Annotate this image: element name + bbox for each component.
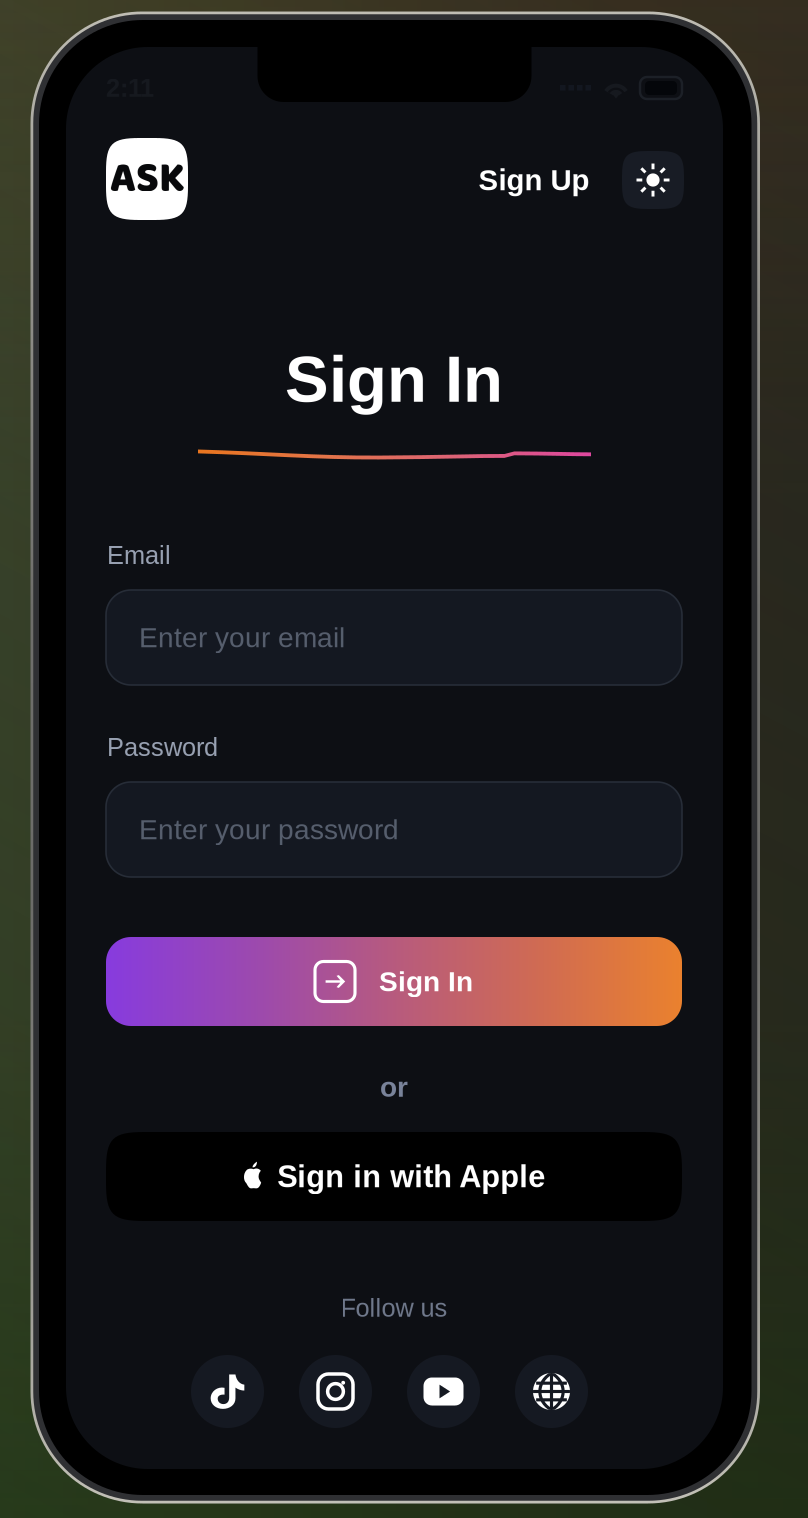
staticText: ASK bbox=[110, 146, 184, 212]
staticText: Enter your password bbox=[139, 814, 399, 845]
button[interactable]: YouTube bbox=[407, 1355, 480, 1428]
button[interactable]: Sign in with Apple bbox=[106, 1132, 682, 1221]
button[interactable]: Website bbox=[515, 1355, 588, 1428]
staticText: Sign In bbox=[379, 966, 473, 997]
staticText: 2:11 bbox=[106, 74, 154, 102]
button[interactable]: Toggle appearance bbox=[622, 151, 684, 209]
button[interactable]: TikTok bbox=[191, 1355, 264, 1428]
staticText: Email bbox=[107, 541, 171, 569]
button[interactable]: Enter your password bbox=[106, 782, 682, 877]
button[interactable]: Sign Up bbox=[479, 160, 589, 200]
staticText: Sign in with Apple bbox=[277, 1159, 545, 1194]
staticText: Sign In bbox=[285, 342, 503, 415]
button[interactable]: Instagram bbox=[299, 1355, 372, 1428]
button[interactable]: Enter your email bbox=[106, 590, 682, 685]
staticText: Sign Up bbox=[478, 164, 589, 196]
button[interactable]: ASK bbox=[106, 138, 188, 220]
staticText: Password bbox=[107, 733, 218, 761]
staticText: Enter your email bbox=[139, 622, 345, 653]
staticText: Follow us bbox=[340, 1294, 447, 1322]
button[interactable]: Sign In bbox=[106, 937, 682, 1026]
staticText: or bbox=[380, 1071, 408, 1103]
